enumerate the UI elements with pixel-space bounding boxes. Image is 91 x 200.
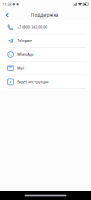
button[interactable]: WhatsApp [0, 48, 91, 62]
button[interactable]: Mail [0, 62, 91, 75]
staticText: 11:38 [2, 2, 11, 7]
button[interactable]: Telegram [0, 34, 91, 48]
staticText: +7 (800) 343-00-00 [17, 25, 47, 29]
staticText: Поддержка [30, 12, 58, 18]
staticText: Mail [17, 66, 24, 70]
staticText: WhatsApp [17, 52, 33, 57]
button[interactable]: Видео инструкции [0, 75, 91, 89]
button[interactable]: Back [1, 8, 12, 21]
button[interactable]: +7 (800) 343-00-00 [0, 20, 91, 34]
staticText: Telegram [17, 38, 32, 43]
staticText: Видео инструкции [17, 79, 48, 84]
